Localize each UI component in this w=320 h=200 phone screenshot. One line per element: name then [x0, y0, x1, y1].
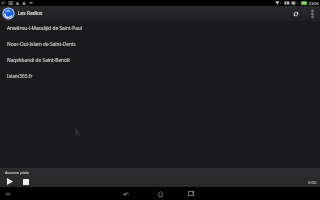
button[interactable]: Refresh: [289, 6, 303, 21]
staticText: 0:00: [308, 179, 317, 185]
button[interactable]: Noor-Oul-Islam de Saint-Denis: [0, 36, 320, 52]
staticText: 23:06: [309, 1, 319, 6]
staticText: Noor-Oul-Islam de Saint-Denis: [7, 41, 76, 48]
staticText: Anwârou-l-Massâjid de Saint-Paul: [7, 25, 83, 32]
button[interactable]: Play: [4, 176, 15, 187]
button[interactable]: Hide keyboard: [2, 188, 14, 200]
staticText: Les Radios: [18, 10, 43, 17]
button[interactable]: Stop: [20, 176, 31, 187]
button[interactable]: Back: [118, 187, 134, 200]
button[interactable]: Islam365.fr: [0, 68, 320, 84]
button[interactable]: More options: [306, 6, 318, 21]
button[interactable]: Recent apps: [183, 187, 199, 200]
button[interactable]: Anwârou-l-Massâjid de Saint-Paul: [0, 20, 320, 36]
staticText: Aucune piste: [5, 170, 30, 175]
staticText: Islam365.fr: [7, 73, 33, 80]
button[interactable]: Naqshbandi de Saint-Benoît: [0, 52, 320, 68]
staticText: Naqshbandi de Saint-Benoît: [7, 57, 70, 64]
button[interactable]: Home: [152, 187, 168, 200]
